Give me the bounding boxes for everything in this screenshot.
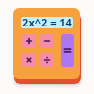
button[interactable]: Multiply [22,53,36,67]
button[interactable]: Equals [61,34,74,67]
button[interactable]: Divide [40,53,54,67]
button[interactable]: Subtract [40,34,54,48]
staticText: 2x^2 = 14 [22,17,72,26]
button[interactable]: Add [22,34,36,48]
